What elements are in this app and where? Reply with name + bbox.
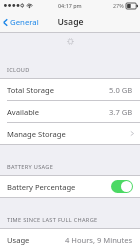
staticText: Total Storage (7, 85, 54, 95)
staticText: ) (22, 2, 24, 9)
button[interactable]: Manage Storage (0, 123, 140, 144)
button[interactable]: General (0, 13, 45, 32)
button[interactable]: Usage (0, 229, 140, 250)
button[interactable]: Available (0, 101, 140, 122)
staticText: 3.7 GB (109, 107, 133, 117)
staticText: ICLOUD (7, 66, 30, 74)
staticText: Usage (57, 16, 84, 28)
staticText: 5.0 GB (109, 85, 133, 95)
staticText: 4 Hours, 9 Minutes (65, 235, 133, 245)
button[interactable]: Battery Percentage, on (111, 180, 133, 193)
staticText: General (10, 17, 39, 28)
staticText: Usage (7, 235, 30, 245)
staticText: 27% (113, 2, 124, 9)
staticText: Available (7, 107, 40, 117)
staticText: BATTERY USAGE (7, 163, 54, 171)
button[interactable]: Total Storage (0, 79, 140, 100)
button[interactable]: Battery Percentage (0, 176, 140, 197)
staticText: TIME SINCE LAST FULL CHARGE (7, 216, 98, 224)
staticText: 04:17 pm (58, 2, 82, 9)
staticText: Manage Storage (7, 129, 66, 139)
staticText: Battery Percentage (7, 182, 76, 192)
